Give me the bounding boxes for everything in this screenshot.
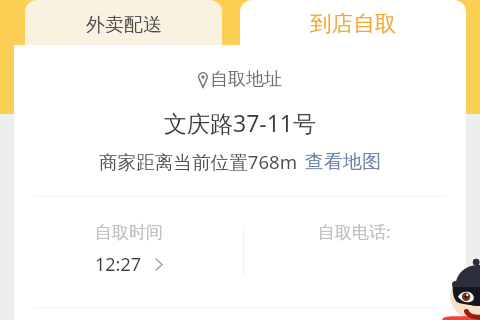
staticText: 外卖配送 bbox=[86, 13, 162, 37]
staticText: 到店自取 bbox=[310, 10, 397, 37]
staticText: 自取地址 bbox=[210, 68, 282, 91]
staticText: 查看地图 bbox=[305, 150, 381, 174]
button[interactable]: 外卖配送 bbox=[25, 0, 222, 45]
button[interactable]: 到店自取 bbox=[240, 0, 466, 45]
staticText: 商家距离当前位置768m bbox=[99, 149, 298, 174]
button[interactable]: 自取时间 bbox=[95, 206, 245, 306]
staticText: 自取电话: bbox=[318, 220, 391, 243]
staticText: 自取时间 bbox=[95, 222, 163, 243]
staticText: 12:27 bbox=[95, 252, 142, 277]
button[interactable]: 查看地图 bbox=[305, 150, 381, 174]
button[interactable]: 自取电话: bbox=[318, 204, 458, 304]
staticText: 文庆路37-11号 bbox=[164, 107, 317, 138]
